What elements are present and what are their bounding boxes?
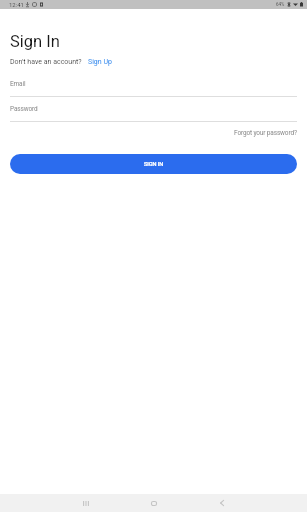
staticText: 64% [276,2,285,7]
button[interactable]: Email [10,78,297,97]
staticText: Don't have an account? [10,58,82,66]
staticText: Email [10,80,26,88]
button[interactable]: Home [120,494,188,512]
button[interactable]: Back [188,494,256,512]
button[interactable]: Recent apps [52,494,120,512]
button[interactable]: Password [10,103,297,122]
staticText: SIGN IN [144,161,164,167]
staticText: Forgot your password? [234,129,297,137]
staticText: 12:41 [9,1,24,8]
button[interactable]: Forgot your password? [234,129,297,137]
staticText: Sign Up [88,58,112,66]
staticText: Password [10,105,38,113]
button[interactable]: SIGN IN [10,154,297,174]
button[interactable]: Sign Up [88,58,112,66]
staticText: Sign In [10,32,60,51]
